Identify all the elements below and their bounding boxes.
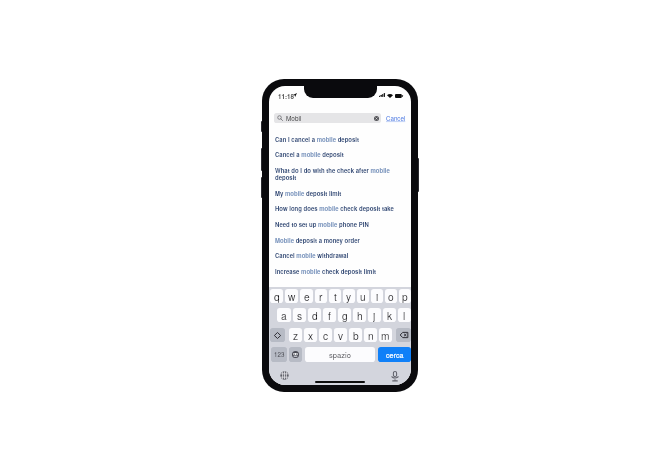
- staticText: b: [353, 328, 359, 342]
- staticText: What do I do with the check after mobile…: [275, 166, 407, 182]
- button[interactable]: o: [385, 289, 397, 303]
- staticText: My mobile deposit limit: [275, 189, 342, 198]
- button[interactable]: y: [343, 289, 355, 303]
- button[interactable]: 123: [271, 347, 287, 362]
- staticText: x: [308, 328, 314, 342]
- button[interactable]: x: [304, 328, 317, 342]
- staticText: t: [334, 289, 337, 303]
- button[interactable]: n: [364, 328, 377, 342]
- staticText: Can I cancel a mobile deposit: [275, 135, 360, 144]
- button[interactable]: u: [357, 289, 369, 303]
- button[interactable]: Cancel mobile withdrawal: [269, 248, 411, 263]
- staticText: Mobile deposit a money order: [275, 236, 360, 245]
- button[interactable]: Dictation: [391, 371, 399, 382]
- staticText: Cancel mobile withdrawal: [275, 251, 349, 260]
- staticText: h: [357, 308, 363, 322]
- staticText: v: [338, 328, 344, 342]
- button[interactable]: h: [353, 308, 366, 322]
- staticText: How long does mobile check deposit take: [275, 204, 394, 213]
- staticText: q: [274, 289, 280, 303]
- button[interactable]: My mobile deposit limit: [269, 186, 411, 201]
- button[interactable]: Cancel a mobile deposit: [269, 147, 411, 162]
- staticText: k: [387, 308, 393, 322]
- staticText: z: [293, 328, 299, 342]
- button[interactable]: Change keyboard: [280, 371, 289, 380]
- staticText: n: [368, 328, 374, 342]
- staticText: u: [360, 289, 366, 303]
- button[interactable]: j: [368, 308, 381, 322]
- button[interactable]: m: [379, 328, 392, 342]
- button[interactable]: s: [293, 308, 306, 322]
- staticText: d: [312, 308, 318, 322]
- staticText: Cancel a mobile deposit: [275, 150, 344, 159]
- button[interactable]: q: [270, 289, 283, 303]
- staticText: cerca: [386, 350, 404, 360]
- staticText: g: [342, 308, 348, 322]
- button[interactable]: e: [300, 289, 313, 303]
- staticText: y: [346, 289, 352, 303]
- button[interactable]: cerca: [378, 347, 411, 362]
- staticText: p: [402, 289, 408, 303]
- button[interactable]: Need to set up mobile phone PIN: [269, 217, 411, 232]
- button[interactable]: v: [334, 328, 347, 342]
- button[interactable]: r: [315, 289, 327, 303]
- button[interactable]: Emoji: [289, 347, 302, 362]
- staticText: m: [381, 328, 390, 342]
- staticText: r: [319, 289, 323, 303]
- button[interactable]: l: [398, 308, 411, 322]
- button[interactable]: w: [285, 289, 298, 303]
- staticText: Need to set up mobile phone PIN: [275, 220, 369, 229]
- button[interactable]: Mobil: [274, 113, 381, 123]
- button[interactable]: Clear text: [374, 116, 379, 121]
- button[interactable]: z: [289, 328, 302, 342]
- staticText: s: [297, 308, 303, 322]
- staticText: Increase mobile check deposit limit: [275, 267, 377, 276]
- button[interactable]: Shift: [270, 328, 285, 342]
- button[interactable]: Cancel: [386, 114, 406, 123]
- button[interactable]: b: [349, 328, 362, 342]
- button[interactable]: a: [277, 308, 291, 322]
- button[interactable]: spazio: [305, 347, 375, 362]
- button[interactable]: t: [329, 289, 341, 303]
- button[interactable]: Backspace: [396, 328, 411, 342]
- button[interactable]: k: [383, 308, 396, 322]
- staticText: Cancel: [386, 114, 406, 123]
- staticText: 11:18: [278, 92, 294, 101]
- staticText: 123: [274, 350, 285, 359]
- button[interactable]: How long does mobile check deposit take: [269, 201, 411, 216]
- button[interactable]: i: [371, 289, 383, 303]
- staticText: o: [388, 289, 394, 303]
- staticText: w: [288, 289, 296, 303]
- staticText: j: [373, 308, 376, 322]
- button[interactable]: f: [323, 308, 336, 322]
- button[interactable]: Increase mobile check deposit limit: [269, 264, 411, 279]
- staticText: l: [403, 308, 406, 322]
- staticText: e: [304, 289, 310, 303]
- button[interactable]: What do I do with the check after mobile…: [269, 163, 411, 185]
- staticText: i: [376, 289, 379, 303]
- button[interactable]: g: [338, 308, 351, 322]
- button[interactable]: Mobile deposit a money order: [269, 233, 411, 248]
- button[interactable]: p: [399, 289, 411, 303]
- staticText: f: [328, 308, 331, 322]
- button[interactable]: d: [308, 308, 321, 322]
- staticText: a: [281, 308, 287, 322]
- staticText: c: [323, 328, 329, 342]
- button[interactable]: Can I cancel a mobile deposit: [269, 132, 411, 147]
- staticText: spazio: [329, 349, 351, 360]
- staticText: Mobil: [286, 114, 302, 123]
- button[interactable]: c: [319, 328, 332, 342]
